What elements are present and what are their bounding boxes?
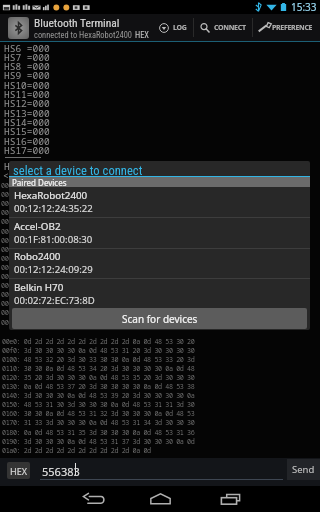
staticText: CONNECT: [214, 23, 246, 33]
staticText: HEX: [135, 30, 149, 40]
staticText: 000: [1, 190, 12, 199]
button[interactable]: LOG: [153, 14, 193, 41]
staticText: HS17=000: [4, 144, 50, 157]
staticText: HS9 =000: [4, 69, 50, 82]
button[interactable]: Accel-OB2: [9, 218, 310, 249]
staticText: 000: [1, 217, 12, 226]
staticText: 01a0: 2d 2d 2d 2d 2d 2d 2d 2d 2d 2d 0a 0…: [2, 446, 320, 455]
staticText: 000: [1, 318, 12, 327]
staticText: 0190: 3d 30 30 30 0a 0d 48 53 31 37 3d 3…: [2, 437, 320, 446]
button[interactable]: CONNECT: [194, 14, 252, 41]
button[interactable]: HexaRobot2400: [9, 187, 310, 218]
staticText: 000: [1, 281, 12, 290]
staticText: 0180: 0a 0d 48 53 31 35 3d 30 30 30 0a 0…: [2, 428, 320, 437]
staticText: Send: [292, 463, 315, 476]
staticText: select a device to connect: [13, 163, 143, 178]
staticText: 000: [1, 299, 12, 308]
button[interactable]: App icon: [8, 17, 29, 39]
staticText: HS6 =000: [4, 42, 50, 55]
button[interactable]: Belkin H70: [9, 279, 310, 310]
staticText: 00:1F:81:00:08:30: [14, 233, 93, 246]
staticText: 556383: [42, 464, 80, 479]
staticText: Paired Devices: [12, 177, 67, 187]
staticText: 00:12:12:24:09:29: [14, 263, 93, 276]
button[interactable]: PREFERENCE: [253, 14, 318, 41]
staticText: HS8 =000: [4, 60, 50, 73]
staticText: 000: [1, 308, 12, 317]
staticText: 000: [1, 227, 12, 236]
button[interactable]: Back: [72, 486, 114, 512]
staticText: HS11=000: [4, 88, 50, 101]
staticText: 00e0: 0d 2d 2d 2d 2d 2d 2d 2d 2d 2d 0a 0…: [2, 337, 320, 346]
staticText: Belkin H70: [14, 281, 64, 294]
button[interactable]: Robo2400: [9, 248, 310, 279]
button[interactable]: Recent apps: [210, 486, 250, 512]
staticText: 000: [1, 254, 12, 263]
staticText: PREFERENCE: [272, 23, 313, 33]
button[interactable]: Home: [140, 486, 180, 512]
button[interactable]: Send: [287, 459, 320, 480]
staticText: 000: [1, 236, 12, 245]
staticText: HEX: [10, 465, 27, 477]
staticText: 0130: 0a 0d 48 53 37 20 3d 30 30 30 30 0…: [2, 382, 320, 391]
staticText: HS0 =000: [4, 160, 50, 173]
staticText: 15:33: [291, 0, 317, 14]
staticText: HS16=000: [4, 135, 50, 148]
staticText: 000: [1, 208, 12, 217]
staticText: 00:12:12:24:35:22: [14, 202, 93, 215]
staticText: 0120: 35 20 3d 30 30 30 0a 0d 48 53 35 2…: [2, 373, 320, 382]
staticText: LOG: [173, 23, 187, 33]
staticText: HS12=000: [4, 97, 50, 110]
staticText: 00f0: 3d 30 30 30 30 0a 0d 48 53 31 20 3…: [2, 346, 320, 355]
staticText: Bluetooth Terminal: [34, 16, 120, 29]
staticText: 00:02:72:EC:73:8D: [14, 294, 95, 307]
staticText: 0160: 30 30 0a 0d 48 53 31 32 3d 30 30 3…: [2, 409, 320, 418]
staticText: 000: [1, 199, 12, 208]
staticText: 0110: 30 30 0a 0d 48 53 34 20 3d 30 30 3…: [2, 364, 320, 373]
staticText: connected to HexaRobot2400: [34, 30, 132, 40]
staticText: Accel-OB2: [14, 220, 61, 233]
staticText: HS14=000: [4, 116, 50, 129]
staticText: HS7 =000: [4, 51, 50, 64]
staticText: HS13=000: [4, 107, 50, 120]
staticText: HS15=000: [4, 125, 50, 138]
staticText: 000: [1, 263, 12, 272]
staticText: <S: [3, 169, 15, 182]
staticText: 0140: 3d 30 30 30 0a 0d 48 53 39 20 3d 3…: [2, 391, 320, 400]
staticText: 000: [1, 245, 12, 254]
button[interactable]: Scan for devices: [12, 308, 307, 329]
staticText: 000: [1, 181, 12, 190]
button[interactable]: HEX: [7, 462, 30, 479]
staticText: 0150: 48 53 31 30 3d 30 30 30 0a 0d 48 5…: [2, 400, 320, 409]
staticText: HS10=000: [4, 79, 50, 92]
staticText: HexaRobot2400: [14, 189, 88, 202]
staticText: Scan for devices: [122, 312, 198, 326]
staticText: Robo2400: [14, 250, 61, 263]
staticText: 000: [1, 290, 12, 299]
staticText: 000: [1, 272, 12, 281]
staticText: 0170: 31 33 3d 30 30 30 0a 0d 48 53 31 3…: [2, 418, 320, 427]
staticText: 0100: 48 53 32 20 3d 30 33 30 30 0a 0d 4…: [2, 355, 320, 364]
